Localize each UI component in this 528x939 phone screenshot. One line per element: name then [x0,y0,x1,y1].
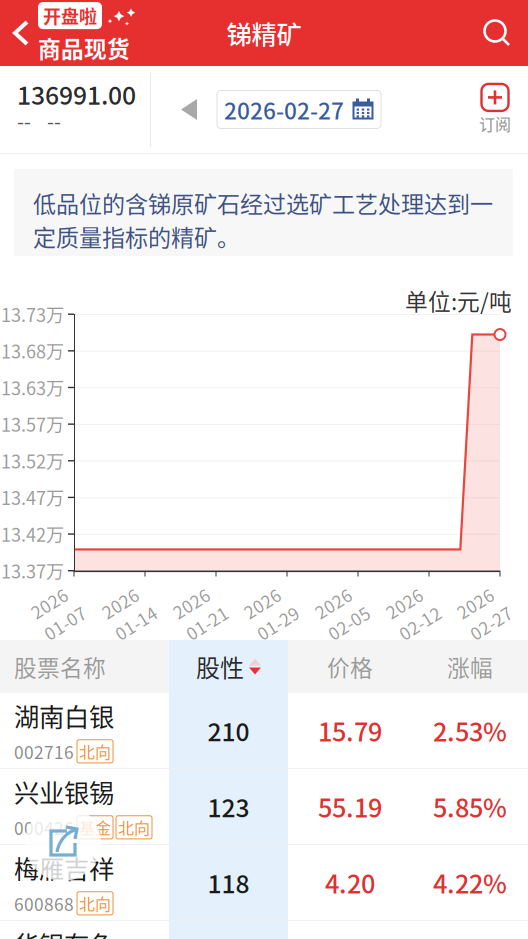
staticText: 梅雁吉祥 [14,849,114,886]
staticText: 600868 [14,891,74,916]
staticText: 2026 02-12 [387,575,433,626]
staticText: 136991.00 [17,76,136,112]
staticText: 股性 [196,649,244,684]
staticText: 基金 [79,816,111,839]
staticText: 13.68万 [1,337,64,364]
button[interactable]: 梅雁吉祥 [0,845,528,920]
staticText: -- -- [17,106,61,135]
button[interactable]: Search [482,18,528,48]
staticText: 订阅 [479,112,511,135]
staticText: 商品现货 [38,31,130,64]
staticText: 13.73万 [1,301,64,327]
staticText: 北向 [79,740,111,763]
staticText: 210 [207,713,249,748]
staticText: 55.19 [318,788,382,825]
staticText: 北向 [79,892,111,915]
staticText: 湖南白银 [14,697,114,734]
button[interactable]: Back [0,18,38,48]
button[interactable]: 华银有色 [0,921,528,939]
staticText: 单位:元/吨 [405,284,512,317]
staticText: 002716 [14,739,74,764]
staticText: 13.52万 [1,447,64,474]
button[interactable]: 湖南白银 [0,693,528,768]
button[interactable]: 订阅 [479,84,528,135]
button[interactable]: 2026-02-27 [217,90,381,128]
staticText: 2026-02-27 [224,93,344,126]
staticText: 低品位的含锑原矿石经过选矿工艺处理达到一定质量指标的精矿。 [33,186,493,253]
button[interactable]: Previous day [151,99,217,120]
staticText: 4.22% [433,864,507,901]
staticText: 13.47万 [1,484,64,510]
staticText: 华银有色 [14,925,114,939]
staticText: 北向 [118,816,150,839]
staticText: 2026 01-07 [32,575,78,626]
staticText: 兴业银锡 [14,773,114,810]
staticText: 2026 02-05 [316,575,362,626]
staticText: 2026 01-21 [174,575,220,626]
staticText: 涨幅 [447,650,493,683]
staticText: 2026 01-29 [245,575,291,626]
staticText: 锑精矿 [226,15,301,51]
staticText: 4.20 [325,864,375,901]
staticText: 股票名称 [14,650,106,683]
staticText: 2026 01-14 [103,575,149,626]
staticText: 13.42万 [1,521,64,547]
staticText: 13.37万 [1,557,64,584]
staticText: 2026 02-27 [458,575,504,626]
staticText: 15.79 [318,712,382,749]
staticText: 118 [207,865,249,900]
staticText: 000426 [14,815,74,840]
staticText: 开盘啦 [43,3,97,29]
staticText: 13.63万 [1,374,64,400]
staticText: 价格 [327,650,373,683]
button[interactable]: Share [25,805,101,881]
staticText: 5.85% [433,788,507,825]
staticText: 13.57万 [1,411,64,437]
button[interactable]: 兴业银锡 [0,769,528,844]
staticText: 2.53% [433,712,507,749]
staticText: 123 [207,789,249,824]
button[interactable]: 股性 [169,640,288,693]
